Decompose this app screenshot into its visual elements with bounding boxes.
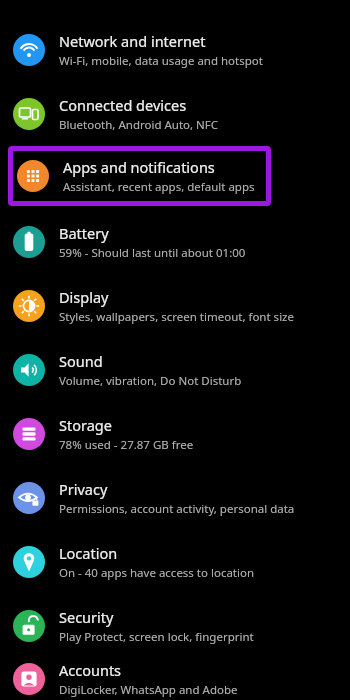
staticText: Sound bbox=[59, 351, 103, 371]
button[interactable]: Accounts bbox=[0, 658, 350, 700]
button[interactable]: Network and internet bbox=[0, 18, 350, 82]
button[interactable]: Location bbox=[0, 530, 350, 594]
staticText: Security bbox=[59, 607, 114, 627]
staticText: 59% - Should last until about 01:00 bbox=[59, 245, 246, 261]
staticText: Play Protect, screen lock, fingerprint bbox=[59, 629, 254, 645]
staticText: DigiLocker, WhatsApp and Adobe bbox=[59, 682, 238, 698]
button[interactable]: Sound bbox=[0, 338, 350, 402]
staticText: Accounts bbox=[59, 660, 122, 680]
staticText: Wi-Fi, mobile, data usage and hotspot bbox=[59, 53, 263, 69]
staticText: Battery bbox=[59, 223, 109, 243]
button[interactable]: Battery bbox=[0, 210, 350, 274]
staticText: Storage bbox=[59, 415, 112, 435]
staticText: Bluetooth, Android Auto, NFC bbox=[59, 117, 219, 133]
button[interactable]: Storage bbox=[0, 402, 350, 466]
button[interactable]: Apps and notifications bbox=[8, 146, 271, 206]
button[interactable]: Display bbox=[0, 274, 350, 338]
staticText: 78% used - 27.87 GB free bbox=[59, 437, 194, 453]
button[interactable]: Privacy bbox=[0, 466, 350, 530]
staticText: Assistant, recent apps, default apps bbox=[63, 179, 255, 195]
button[interactable]: Connected devices bbox=[0, 82, 350, 146]
staticText: Permissions, account activity, personal … bbox=[59, 501, 295, 517]
staticText: Network and internet bbox=[59, 31, 206, 51]
staticText: Styles, wallpapers, screen timeout, font… bbox=[59, 309, 294, 325]
staticText: Display bbox=[59, 287, 109, 307]
staticText: On - 40 apps have access to location bbox=[59, 565, 255, 581]
staticText: Privacy bbox=[59, 479, 108, 499]
button[interactable]: Security bbox=[0, 594, 350, 658]
staticText: Connected devices bbox=[59, 95, 187, 115]
staticText: Location bbox=[59, 543, 118, 563]
staticText: Volume, vibration, Do Not Disturb bbox=[59, 373, 242, 389]
staticText: Apps and notifications bbox=[63, 157, 215, 177]
